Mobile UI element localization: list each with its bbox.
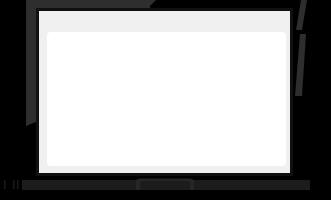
button[interactable]: Television display illustration bbox=[0, 0, 331, 200]
